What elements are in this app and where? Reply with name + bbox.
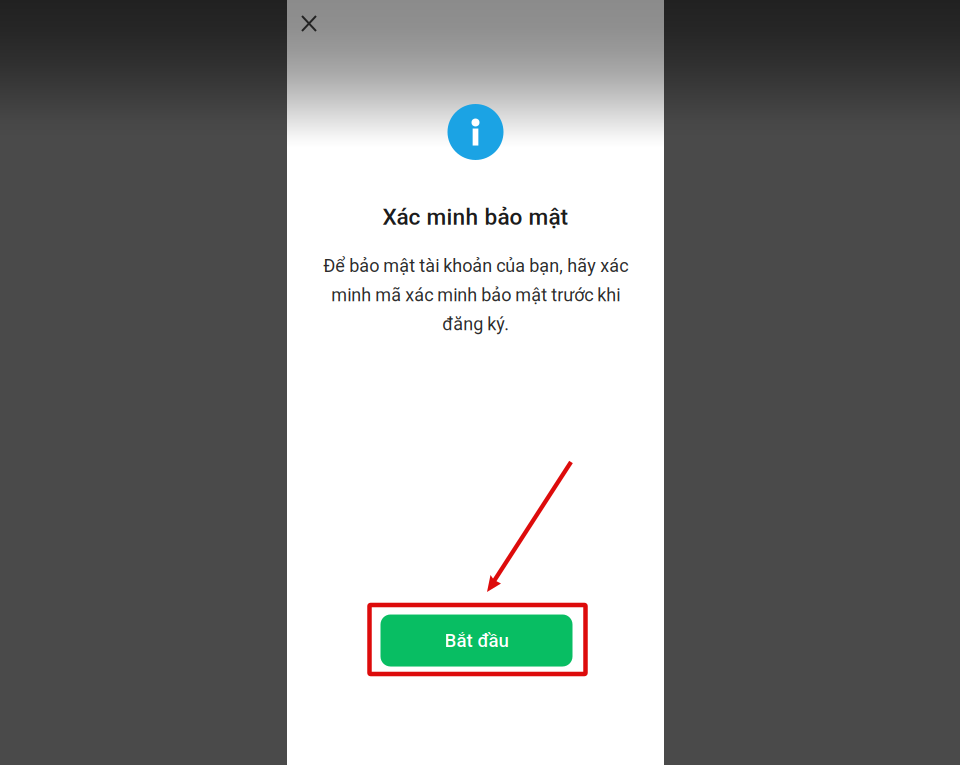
staticText: Bắt đầu [444, 630, 508, 651]
button[interactable]: Close [291, 5, 327, 42]
staticText: Để bảo mật tài khoản của bạn, hãy xác mi… [323, 255, 628, 335]
button[interactable]: Bắt đầu [380, 614, 572, 666]
staticText: Xác minh bảo mật [382, 204, 568, 230]
